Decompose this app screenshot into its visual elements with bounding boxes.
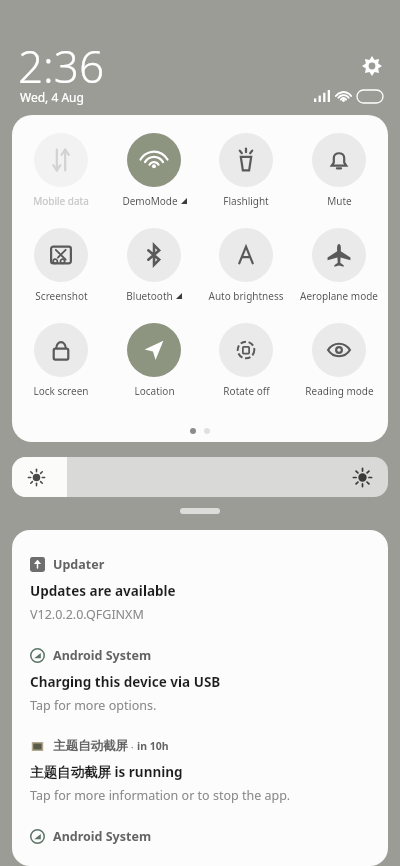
staticText: Updater <box>53 556 105 573</box>
button[interactable]: Brightness <box>12 457 388 497</box>
button[interactable]: Location <box>110 323 198 398</box>
button[interactable]: Android System <box>12 623 388 714</box>
staticText: Android System <box>53 828 152 845</box>
staticText: Tap for more options. <box>30 697 157 714</box>
staticText: in 10h <box>137 739 169 753</box>
staticText: Bluetooth <box>126 289 173 303</box>
staticText: Aeroplane mode <box>300 289 378 303</box>
button[interactable]: Aeroplane mode <box>295 228 383 303</box>
staticText: Screenshot <box>35 289 88 303</box>
staticText: Mobile data <box>33 194 89 208</box>
staticText: Auto brightness <box>208 289 284 303</box>
button[interactable]: Settings <box>358 52 386 80</box>
button[interactable]: Screenshot <box>17 228 105 303</box>
staticText: Wed, 4 Aug <box>20 89 84 105</box>
staticText: Android System <box>53 647 152 664</box>
staticText: Flashlight <box>223 194 269 208</box>
staticText: V12.0.2.0.QFGINXM <box>30 606 144 623</box>
button[interactable]: Lock screen <box>17 323 105 398</box>
button[interactable]: Auto brightness <box>202 228 290 303</box>
staticText: Updates are available <box>30 582 176 600</box>
staticText: Mute <box>327 194 352 208</box>
staticText: Rotate off <box>223 384 270 398</box>
button[interactable]: Rotate off <box>202 323 290 398</box>
staticText: 2:36 <box>18 36 105 96</box>
staticText: Tap for more information or to stop the … <box>30 787 291 804</box>
staticText: Lock screen <box>33 384 89 398</box>
staticText: Charging this device via USB <box>30 673 221 691</box>
staticText: Reading mode <box>305 384 374 398</box>
staticText: 主题自动截屏 <box>53 738 128 754</box>
staticText: · <box>128 739 137 754</box>
button[interactable]: Bluetooth <box>110 228 198 303</box>
button[interactable]: Flashlight <box>202 133 290 208</box>
button[interactable]: 主题自动截屏 <box>12 714 388 804</box>
button[interactable]: Android System <box>12 804 388 845</box>
button[interactable]: Mobile data <box>17 133 105 208</box>
staticText: 主题自动截屏 is running <box>30 763 183 781</box>
staticText: Location <box>134 384 175 398</box>
button[interactable]: Reading mode <box>295 323 383 398</box>
button[interactable]: DemoMode <box>110 133 198 208</box>
staticText: DemoMode <box>122 194 178 208</box>
button[interactable]: Mute <box>295 133 383 208</box>
button[interactable]: Updater <box>12 530 388 623</box>
